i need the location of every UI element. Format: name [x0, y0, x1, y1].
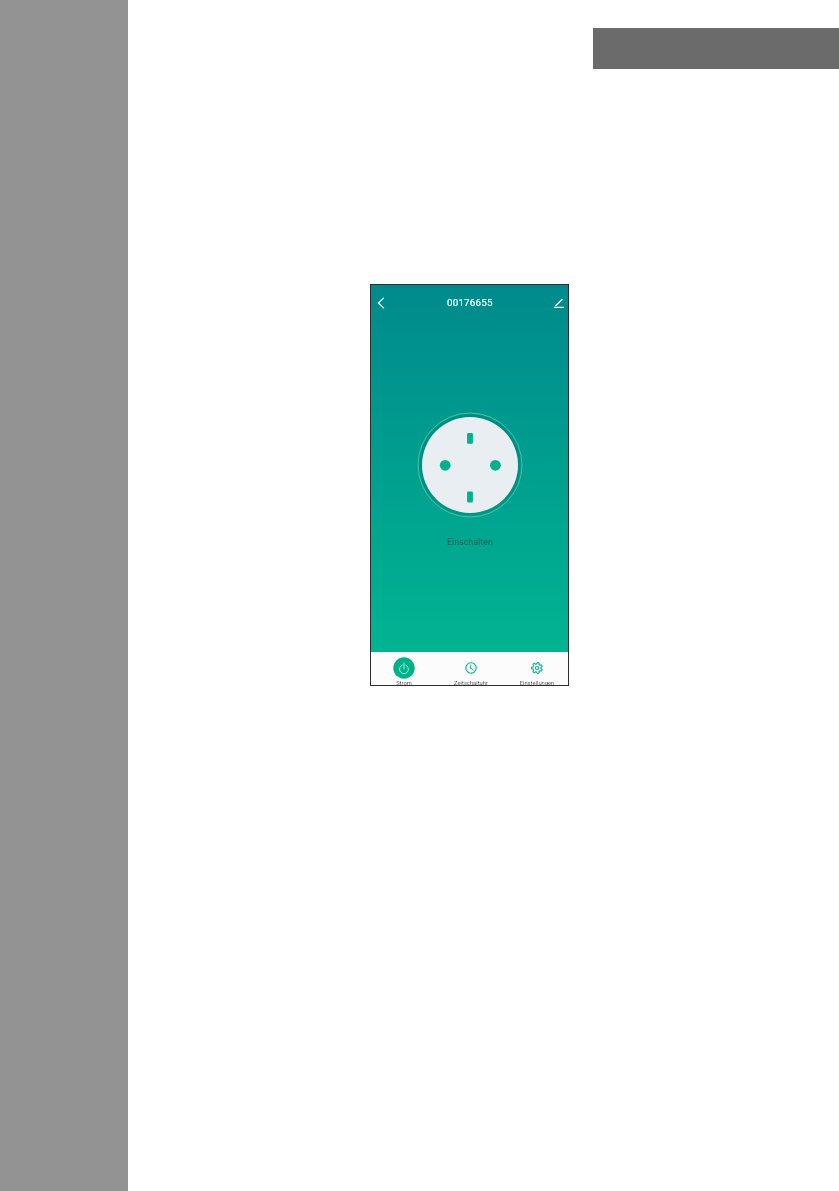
button[interactable]: Back	[369, 291, 393, 315]
button[interactable]: Einschalten	[417, 412, 523, 518]
button[interactable]: Einstellungen	[504, 652, 570, 685]
staticText: Einstellungen	[504, 680, 570, 685]
staticText: Zeitschaltuhr	[438, 680, 504, 685]
button[interactable]: Edit name	[547, 291, 571, 315]
staticText: Strom	[371, 680, 437, 685]
staticText: Einschalten	[447, 537, 493, 547]
staticText: 00176655	[447, 297, 493, 308]
button[interactable]: Strom	[371, 652, 437, 685]
button[interactable]: Zeitschaltuhr	[438, 652, 504, 685]
